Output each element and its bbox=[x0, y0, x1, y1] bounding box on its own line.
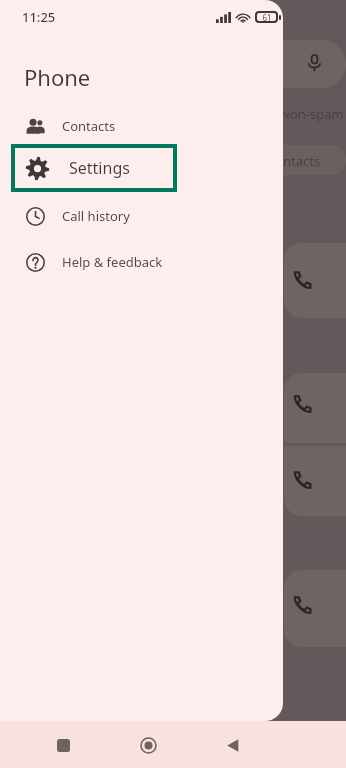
button[interactable] bbox=[284, 243, 346, 318]
button[interactable]: Recent apps bbox=[41, 723, 85, 767]
staticText: Phone bbox=[24, 62, 91, 92]
staticText: Help & feedback bbox=[62, 253, 163, 271]
staticText: Call history bbox=[62, 207, 130, 225]
staticText: Settings bbox=[69, 157, 130, 179]
button[interactable]: Home bbox=[126, 723, 170, 767]
button[interactable]: Help & feedback bbox=[0, 244, 283, 280]
staticText: Non-spam bbox=[280, 105, 344, 123]
staticText: 11:25 bbox=[22, 8, 56, 26]
button[interactable]: Back bbox=[211, 723, 255, 767]
staticText: 61 bbox=[262, 12, 272, 23]
other: Call bbox=[293, 470, 312, 489]
other: Call bbox=[293, 595, 312, 614]
button[interactable]: Contacts bbox=[0, 108, 283, 144]
button[interactable] bbox=[284, 570, 346, 647]
staticText: ntacts bbox=[283, 152, 321, 170]
button[interactable]: Settings bbox=[11, 144, 177, 192]
other: Call bbox=[293, 270, 312, 289]
button[interactable]: Call history bbox=[0, 198, 283, 234]
button[interactable] bbox=[284, 373, 346, 443]
button[interactable] bbox=[284, 446, 346, 516]
staticText: Contacts bbox=[62, 117, 116, 135]
other: Call bbox=[293, 394, 312, 413]
other: Voice search bbox=[306, 54, 323, 71]
